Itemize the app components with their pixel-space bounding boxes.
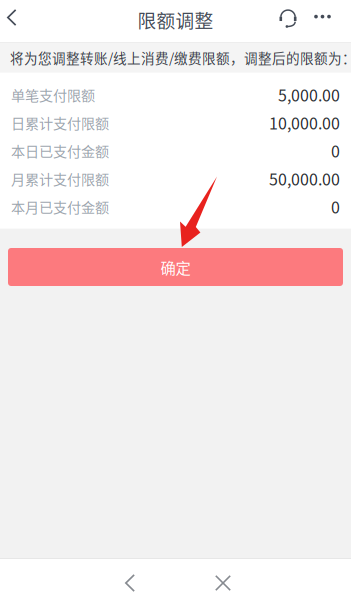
- staticText: 本日已支付金额: [11, 140, 109, 161]
- staticText: 限额调整: [137, 6, 213, 33]
- button[interactable]: Back: [101, 559, 159, 607]
- staticText: 50,000.00: [269, 167, 340, 190]
- staticText: 0: [331, 195, 340, 218]
- button[interactable]: More: [306, 0, 342, 42]
- staticText: 0: [331, 139, 340, 162]
- button[interactable]: Back: [0, 0, 44, 42]
- staticText: 将为您调整转账/线上消费/缴费限额，调整后的限额为：: [10, 48, 351, 67]
- staticText: 10,000.00: [269, 111, 340, 134]
- button[interactable]: Close: [194, 559, 252, 607]
- button[interactable]: Customer service: [270, 0, 306, 42]
- staticText: 日累计支付限额: [11, 112, 109, 133]
- staticText: 确定: [160, 256, 190, 278]
- staticText: 本月已支付金额: [11, 196, 109, 217]
- staticText: 月累计支付限额: [11, 168, 109, 189]
- button[interactable]: 确定: [8, 248, 343, 286]
- staticText: 单笔支付限额: [11, 84, 95, 105]
- staticText: 5,000.00: [278, 83, 340, 106]
